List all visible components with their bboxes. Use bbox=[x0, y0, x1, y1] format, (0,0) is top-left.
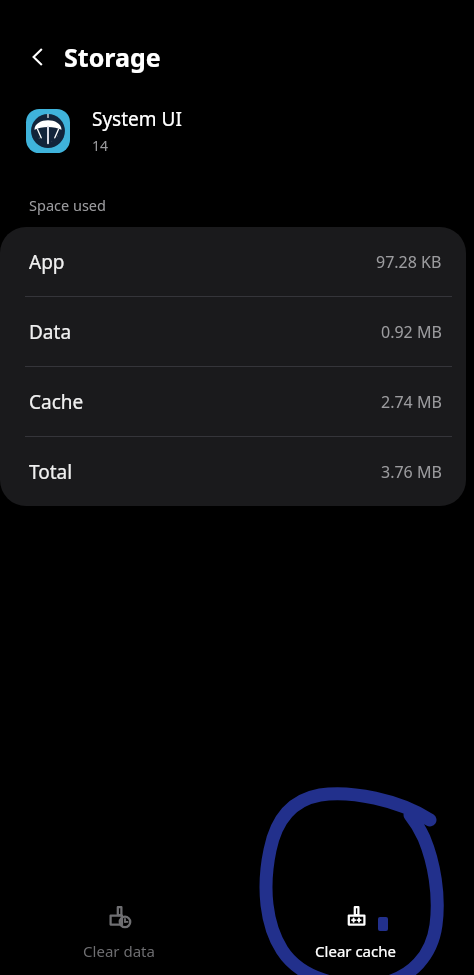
staticText: Clear data bbox=[83, 941, 155, 961]
button[interactable]: Data bbox=[0, 297, 466, 366]
button[interactable]: App bbox=[0, 227, 466, 296]
staticText: 14 bbox=[92, 136, 109, 155]
staticText: Clear cache bbox=[315, 941, 396, 961]
staticText: Data bbox=[29, 319, 72, 345]
staticText: 3.76 MB bbox=[381, 461, 442, 483]
staticText: Storage bbox=[64, 40, 161, 74]
button[interactable]: Back bbox=[16, 35, 60, 79]
staticText: Space used bbox=[29, 195, 106, 215]
staticText: 0.92 MB bbox=[381, 321, 442, 343]
button[interactable]: Cache bbox=[0, 367, 466, 436]
staticText: System UI bbox=[92, 106, 182, 132]
staticText: 97.28 KB bbox=[376, 251, 442, 273]
staticText: Total bbox=[29, 459, 73, 485]
button[interactable]: Clear data bbox=[0, 897, 237, 967]
button[interactable]: Clear cache bbox=[237, 897, 474, 967]
button[interactable]: System UI bbox=[26, 106, 448, 155]
staticText: App bbox=[29, 249, 65, 275]
button[interactable]: Total bbox=[0, 437, 466, 506]
staticText: Cache bbox=[29, 389, 84, 415]
staticText: 2.74 MB bbox=[381, 391, 442, 413]
